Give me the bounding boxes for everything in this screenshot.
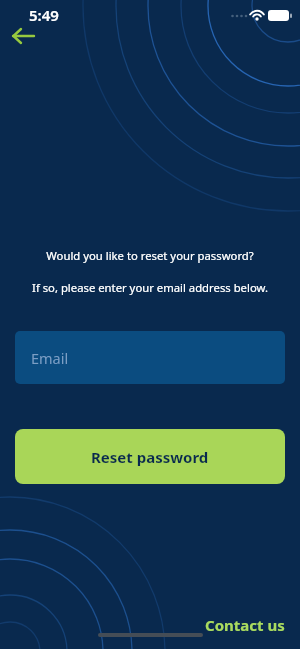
staticText: If so, please enter your email address b… bbox=[32, 280, 268, 295]
button[interactable]: Reset password bbox=[15, 429, 285, 484]
staticText: Reset password bbox=[91, 447, 209, 467]
button[interactable]: Contact us bbox=[205, 615, 285, 635]
button[interactable]: Email bbox=[15, 331, 285, 384]
staticText: Would you like to reset your password? bbox=[46, 248, 254, 263]
staticText: Email bbox=[31, 348, 69, 368]
button[interactable] bbox=[6, 18, 42, 54]
staticText: 5:49 bbox=[29, 5, 59, 25]
staticText: Contact us bbox=[205, 615, 285, 635]
